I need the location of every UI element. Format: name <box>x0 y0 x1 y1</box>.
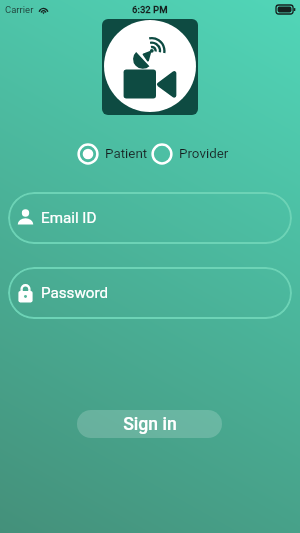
staticText: Patient <box>105 146 148 162</box>
staticText: 6:32 PM <box>132 4 168 15</box>
button[interactable]: Sign in <box>77 410 222 438</box>
staticText: Sign in <box>123 414 177 435</box>
staticText: Password <box>41 284 109 302</box>
button[interactable]: Password <box>8 267 292 319</box>
button[interactable]: Patient <box>77 143 148 165</box>
button[interactable]: Email ID <box>8 192 292 244</box>
staticText: Email ID <box>41 209 97 227</box>
button[interactable]: Provider <box>151 143 229 165</box>
staticText: Carrier <box>5 4 34 15</box>
staticText: Provider <box>179 146 229 162</box>
